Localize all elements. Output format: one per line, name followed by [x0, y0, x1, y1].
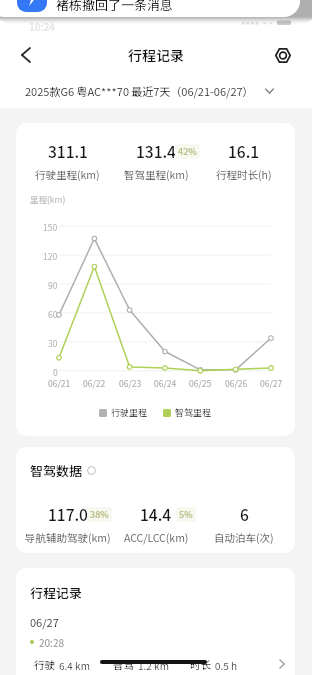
staticText: 1.2 km [138, 658, 169, 672]
staticText: 117.0 [48, 503, 88, 525]
staticText: 60 [48, 308, 58, 320]
staticText: 38% [90, 508, 109, 521]
staticText: 行驶里程 [111, 406, 148, 419]
staticText: 06/26 [225, 377, 248, 389]
staticText: 行程时长(h) [216, 167, 272, 182]
staticText: 06/24 [154, 377, 177, 389]
staticText: 褚栋撤回了一条消息 [56, 0, 174, 14]
staticText: 06/25 [189, 377, 212, 389]
staticText: 10:24 [29, 19, 55, 33]
staticText: 行程记录 [30, 583, 83, 602]
staticText: 行驶里程(km) [35, 167, 100, 182]
staticText: 时长 [190, 657, 211, 672]
staticText: 0 [53, 366, 58, 378]
staticText: 06/23 [119, 377, 142, 389]
staticText: 30 [48, 337, 58, 349]
staticText: 311.1 [48, 140, 88, 162]
staticText: 90 [48, 279, 58, 291]
staticText: 16.1 [228, 140, 260, 162]
staticText: 150 [43, 221, 58, 233]
staticText: 06/27 [30, 614, 59, 630]
staticText: 6 [240, 503, 249, 525]
staticText: 06/22 [83, 377, 106, 389]
button[interactable]: Back [9, 39, 41, 71]
staticText: 0.5 h [215, 658, 238, 672]
staticText: 14.4 [140, 503, 172, 525]
staticText: 行程记录 [128, 45, 184, 65]
staticText: 行驶 [34, 657, 55, 672]
staticText: 自动泊车(次) [214, 530, 274, 545]
staticText: 6.4 km [59, 658, 90, 672]
staticText: 里程(km) [30, 193, 66, 205]
staticText: 06/27 [260, 377, 283, 389]
staticText: 智驾里程(km) [124, 167, 189, 182]
staticText: 131.4 [136, 140, 176, 162]
staticText: 智驾 [113, 657, 134, 672]
staticText: ACC/LCC(km) [124, 530, 189, 545]
staticText: 5% [179, 508, 193, 521]
staticText: 2025款G6 粤AC***70 最近7天（06/21-06/27） [25, 83, 254, 99]
button[interactable]: 行驶 [16, 651, 295, 675]
staticText: 120 [43, 250, 58, 262]
staticText: 导航辅助驾驶(km) [25, 530, 111, 545]
button[interactable]: Settings [267, 39, 299, 71]
staticText: 智驾数据 [30, 461, 83, 480]
staticText: 20:28 [39, 635, 64, 649]
staticText: 42% [178, 145, 197, 158]
staticText: 06/21 [48, 377, 71, 389]
staticText: 智驾里程 [175, 406, 212, 419]
